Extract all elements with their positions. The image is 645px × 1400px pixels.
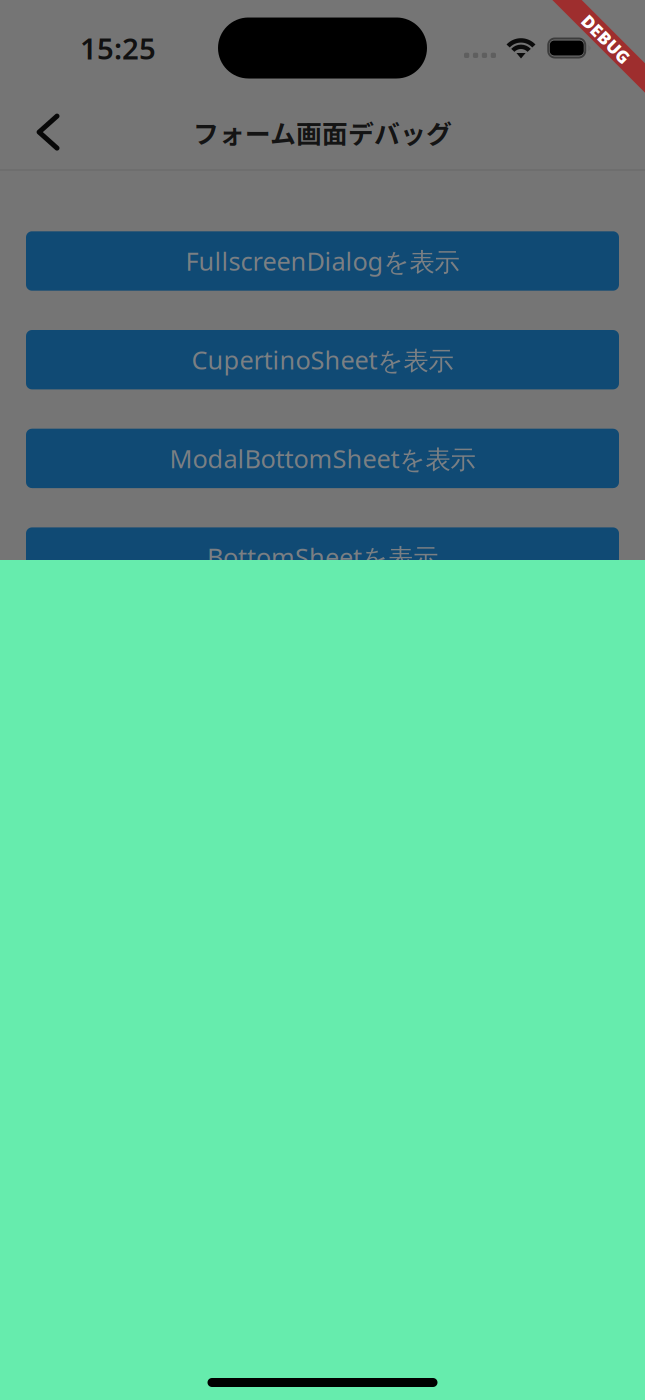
staticText: ModalBottomSheetを表示 bbox=[169, 441, 475, 475]
button[interactable]: ModalBottomSheetを表示 bbox=[26, 429, 619, 488]
button[interactable]: Back bbox=[0, 96, 92, 169]
staticText: FullscreenDialogを表示 bbox=[185, 244, 459, 278]
button[interactable]: CupertinoSheetを表示 bbox=[26, 330, 619, 389]
staticText: 15:25 bbox=[80, 28, 156, 67]
staticText: CupertinoSheetを表示 bbox=[191, 343, 453, 377]
button[interactable]: BottomSheetを表示 bbox=[26, 527, 619, 587]
staticText: BottomSheetを表示 bbox=[207, 540, 438, 574]
button[interactable]: FullscreenDialogを表示 bbox=[26, 231, 619, 291]
staticText: DEBUG bbox=[575, 27, 636, 50]
staticText: フォーム画面デバッグ bbox=[193, 114, 452, 151]
